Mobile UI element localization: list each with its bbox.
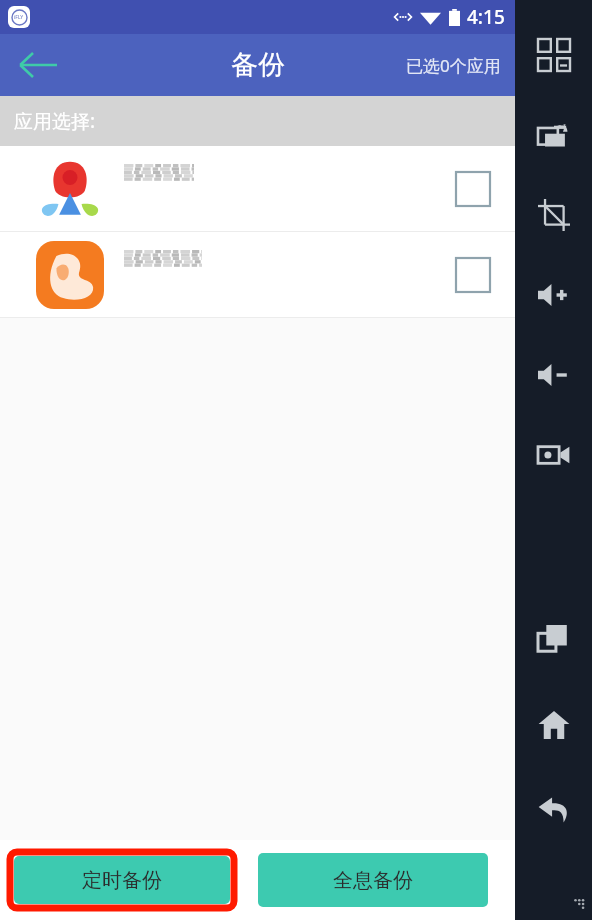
button[interactable]: Screenshot grid: [527, 28, 581, 82]
button[interactable]: Rotate: [527, 108, 581, 162]
staticText: 定时备份: [82, 868, 162, 893]
staticText: 备份: [231, 48, 285, 82]
button[interactable]: Crop: [527, 188, 581, 242]
button[interactable]: Back: [527, 782, 581, 836]
button[interactable]: Recents: [527, 614, 581, 668]
button[interactable]: Home: [527, 698, 581, 752]
button[interactable]: Volume up: [527, 268, 581, 322]
staticText: 4:15: [467, 4, 505, 30]
button[interactable]: Select app: [443, 245, 503, 305]
button[interactable]: 全息备份: [258, 853, 488, 907]
button[interactable]: Back: [0, 34, 74, 96]
button[interactable]: Record video: [527, 428, 581, 482]
button[interactable]: 已选0个应用: [392, 34, 515, 96]
button[interactable]: Select app: [443, 159, 503, 219]
button[interactable]: 定时备份: [14, 856, 230, 904]
button[interactable]: Volume down: [527, 348, 581, 402]
staticText: 已选0个应用: [406, 54, 501, 77]
staticText: 应用选择:: [14, 108, 96, 134]
staticText: iFLY: [14, 14, 24, 21]
staticText: 全息备份: [333, 868, 413, 893]
